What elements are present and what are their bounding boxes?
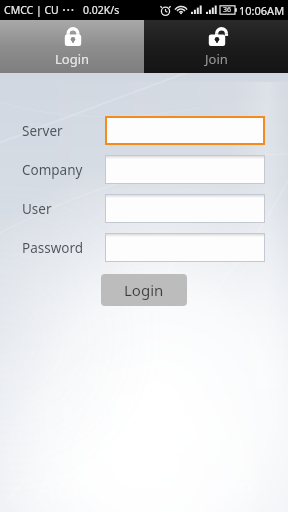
- staticText: 10:06AM: [239, 3, 285, 18]
- button[interactable]: Login: [101, 274, 187, 306]
- button[interactable]: [106, 234, 264, 261]
- staticText: Server: [22, 122, 63, 140]
- staticText: Join: [205, 50, 228, 68]
- staticText: CMCC | CU: [4, 3, 59, 17]
- button[interactable]: [106, 156, 264, 183]
- staticText: User: [22, 200, 52, 218]
- button[interactable]: [106, 195, 264, 222]
- staticText: Company: [22, 161, 83, 179]
- staticText: Login: [124, 280, 164, 300]
- staticText: 36: [223, 5, 232, 15]
- staticText: Password: [22, 239, 84, 257]
- button[interactable]: Login: [0, 20, 144, 73]
- staticText: 0.02K/s: [83, 3, 120, 17]
- staticText: Login: [55, 50, 90, 68]
- button[interactable]: Join: [144, 20, 288, 73]
